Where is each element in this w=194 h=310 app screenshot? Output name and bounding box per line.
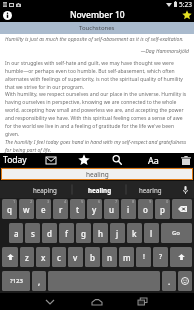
button[interactable]: v bbox=[68, 247, 83, 267]
staticText: 0 bbox=[166, 199, 169, 204]
button[interactable]: u bbox=[104, 199, 119, 219]
button[interactable]: ! bbox=[136, 247, 151, 267]
staticText: g bbox=[81, 228, 86, 239]
button[interactable]: d bbox=[42, 223, 57, 243]
button[interactable]: Text size bbox=[143, 153, 163, 167]
staticText: In our struggles with self-hate and guil… bbox=[5, 60, 189, 90]
staticText: ?123 bbox=[10, 277, 23, 285]
button[interactable]: ? bbox=[153, 247, 168, 267]
button[interactable]: Emoji bbox=[178, 271, 192, 291]
staticText: a bbox=[14, 228, 19, 239]
staticText: u bbox=[109, 204, 115, 215]
staticText: m bbox=[123, 252, 131, 263]
staticText: y bbox=[92, 204, 97, 215]
button[interactable]: f bbox=[59, 223, 74, 243]
button[interactable]: Shift bbox=[2, 247, 18, 267]
staticText: The humility I feel today goes hand in h… bbox=[5, 139, 189, 153]
button[interactable]: p bbox=[155, 199, 170, 219]
button[interactable]: y bbox=[87, 199, 102, 219]
staticText: f bbox=[65, 228, 68, 239]
staticText: x bbox=[41, 252, 46, 263]
button[interactable]: heaping bbox=[18, 181, 72, 198]
staticText: Touchstones bbox=[79, 24, 115, 32]
button[interactable]: l bbox=[144, 223, 159, 243]
staticText: Today bbox=[3, 154, 27, 166]
staticText: n bbox=[107, 252, 113, 263]
staticText: 5 bbox=[81, 199, 84, 204]
staticText: t bbox=[76, 204, 80, 215]
staticText: Humility is just as much the opposite of… bbox=[5, 36, 184, 43]
button[interactable]: j bbox=[110, 223, 125, 243]
staticText: 5:23 bbox=[179, 0, 192, 8]
button[interactable]: Home bbox=[85, 293, 109, 310]
button[interactable]: s bbox=[25, 223, 40, 243]
button[interactable]: Delete bbox=[178, 153, 194, 167]
button[interactable]: c bbox=[52, 247, 66, 267]
staticText: s bbox=[31, 228, 35, 239]
staticText: —Dag Hammarskjöld bbox=[5, 48, 189, 55]
staticText: Aa bbox=[148, 154, 159, 166]
button[interactable]: m bbox=[119, 247, 134, 267]
button[interactable]: t bbox=[70, 199, 85, 219]
button[interactable]: Voice input bbox=[176, 181, 194, 198]
button[interactable]: h bbox=[93, 223, 108, 243]
button[interactable]: ?123 bbox=[2, 271, 30, 291]
staticText: 3 bbox=[47, 199, 50, 204]
staticText: d bbox=[47, 228, 52, 239]
button[interactable]: Shift bbox=[170, 247, 192, 267]
button[interactable]: a bbox=[9, 223, 23, 243]
staticText: hearing bbox=[139, 186, 162, 194]
button[interactable]: Backspace bbox=[172, 199, 192, 219]
staticText: p bbox=[160, 204, 165, 215]
button[interactable]: x bbox=[36, 247, 50, 267]
staticText: 7 bbox=[115, 199, 118, 204]
button[interactable]: w bbox=[19, 199, 34, 219]
button[interactable]: Email bbox=[41, 153, 61, 167]
staticText: b bbox=[90, 252, 95, 263]
staticText: ? bbox=[159, 252, 163, 262]
staticText: v bbox=[73, 252, 78, 263]
button[interactable]: g bbox=[76, 223, 91, 243]
button[interactable]: Go bbox=[161, 223, 192, 243]
button[interactable]: Bookmark bbox=[74, 153, 94, 167]
button[interactable]: Recent apps bbox=[130, 293, 154, 310]
button[interactable]: i bbox=[121, 199, 136, 219]
staticText: 8 bbox=[132, 199, 135, 204]
button[interactable]: o bbox=[138, 199, 153, 219]
staticText: , bbox=[38, 276, 41, 287]
button[interactable]: . bbox=[162, 271, 176, 291]
button[interactable]: Hide keyboard bbox=[38, 293, 62, 310]
staticText: 1 bbox=[13, 199, 16, 204]
button[interactable]: hearing bbox=[124, 181, 176, 198]
button[interactable]: Today bbox=[3, 153, 27, 167]
button[interactable]: healing bbox=[73, 181, 127, 198]
button[interactable]: Search bbox=[107, 153, 127, 167]
staticText: 4 bbox=[64, 199, 67, 204]
staticText: November 10 bbox=[70, 9, 125, 21]
staticText: c bbox=[57, 252, 61, 263]
button[interactable]: Info bbox=[0, 8, 14, 22]
button[interactable]: z bbox=[20, 247, 34, 267]
staticText: 2 bbox=[30, 199, 33, 204]
staticText: healing bbox=[86, 170, 109, 179]
button[interactable]: k bbox=[127, 223, 142, 243]
button[interactable]: , bbox=[32, 271, 46, 291]
staticText: With humility, we respect ourselves and … bbox=[5, 91, 189, 137]
button[interactable]: healing bbox=[2, 169, 192, 179]
button[interactable]: b bbox=[85, 247, 100, 267]
staticText: i bbox=[127, 204, 130, 215]
staticText: heaping bbox=[33, 186, 57, 194]
staticText: j bbox=[116, 228, 119, 239]
button[interactable]: q bbox=[2, 199, 17, 219]
button[interactable]: e bbox=[36, 199, 51, 219]
staticText: h bbox=[98, 228, 104, 239]
button[interactable]: n bbox=[102, 247, 117, 267]
staticText: q bbox=[7, 204, 12, 215]
button[interactable]: Favorite bbox=[180, 8, 194, 22]
staticText: Go bbox=[172, 229, 181, 237]
button[interactable]: r bbox=[53, 199, 68, 219]
staticText: 6 bbox=[98, 199, 101, 204]
staticText: o bbox=[143, 204, 148, 215]
staticText: k bbox=[132, 228, 137, 239]
